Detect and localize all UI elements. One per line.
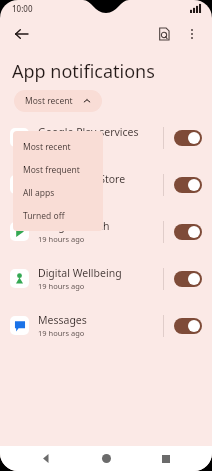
- staticText: Google Search: [38, 219, 110, 233]
- staticText: 10:00: [12, 3, 33, 14]
- staticText: Google Play Store: [38, 172, 126, 186]
- button[interactable]: Most frequent: [13, 158, 103, 181]
- staticText: Most recent: [25, 95, 73, 107]
- button[interactable]: Back: [32, 446, 60, 471]
- button[interactable]: Messages: [0, 302, 212, 349]
- button[interactable]: Recent apps: [152, 446, 180, 471]
- button[interactable]: Toggle notifications for Google Play ser…: [174, 130, 202, 146]
- button[interactable]: More options: [178, 20, 206, 48]
- staticText: 19 hours ago: [38, 234, 85, 244]
- staticText: 19 hours ago: [38, 281, 85, 291]
- staticText: 19 hours ago: [38, 140, 85, 150]
- staticText: Turned off: [23, 210, 65, 222]
- button[interactable]: Digital Wellbeing: [0, 255, 212, 302]
- staticText: Most recent: [23, 141, 71, 153]
- button[interactable]: Toggle notifications for Google Search: [174, 224, 202, 240]
- button[interactable]: Back: [6, 19, 36, 49]
- button[interactable]: Home: [92, 446, 120, 471]
- staticText: 19 hours ago: [38, 187, 85, 197]
- button[interactable]: Google Play services: [0, 114, 212, 161]
- button[interactable]: Most recent: [13, 135, 103, 158]
- button[interactable]: Turned off: [13, 204, 103, 227]
- button[interactable]: Google Play Store: [0, 161, 212, 208]
- staticText: Digital Wellbeing: [38, 266, 122, 280]
- staticText: 19 hours ago: [38, 328, 85, 338]
- staticText: Messages: [38, 313, 87, 327]
- button[interactable]: Search history: [150, 20, 178, 48]
- button[interactable]: Toggle notifications for Digital Wellbei…: [174, 271, 202, 287]
- button[interactable]: Toggle notifications for Messages: [174, 318, 202, 334]
- button[interactable]: Google Search: [0, 208, 212, 255]
- button[interactable]: Toggle notifications for Google Play Sto…: [174, 177, 202, 193]
- button[interactable]: All apps: [13, 181, 103, 204]
- staticText: Google Play services: [38, 125, 139, 139]
- button[interactable]: Most recent: [14, 90, 102, 112]
- staticText: App notifications: [12, 59, 155, 84]
- staticText: Most frequent: [23, 164, 80, 176]
- staticText: All apps: [23, 187, 55, 199]
